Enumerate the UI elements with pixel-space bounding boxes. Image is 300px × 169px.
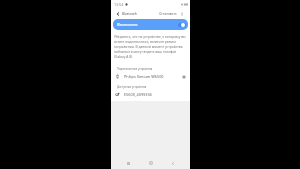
staticText: Доступные устройства bbox=[117, 85, 147, 89]
button[interactable]: E560X_4099394 bbox=[111, 90, 190, 99]
staticText: Philips Xenium W6500 bbox=[124, 74, 164, 79]
button[interactable]: Ещё bbox=[179, 11, 185, 17]
button[interactable]: Последние приложения bbox=[122, 157, 134, 169]
button[interactable]: Назад bbox=[167, 157, 179, 169]
staticText: E560X_4099394 bbox=[124, 92, 152, 97]
staticText: 13:54 bbox=[114, 2, 124, 7]
staticText: Bluetooth bbox=[122, 12, 137, 16]
button[interactable]: Назад bbox=[114, 10, 121, 17]
staticText: Остановить bbox=[159, 12, 177, 16]
button[interactable]: Включено bbox=[113, 19, 188, 30]
staticText: Убедитесь, что на устройстве, к которому… bbox=[114, 34, 188, 59]
button[interactable]: Остановить bbox=[158, 10, 178, 18]
button[interactable]: Настройки bbox=[181, 74, 187, 80]
button[interactable]: Главный экран bbox=[145, 157, 157, 169]
staticText: Включено bbox=[117, 22, 138, 28]
staticText: Подключенные устройства bbox=[117, 67, 153, 71]
button[interactable]: Philips Xenium W6500 bbox=[111, 72, 190, 81]
